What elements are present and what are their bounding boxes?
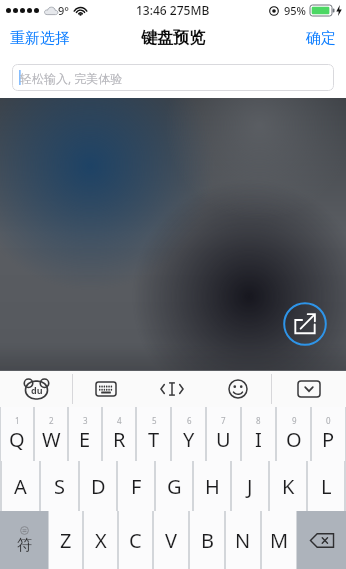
button[interactable]: M [262,511,296,569]
staticText: 9 [292,415,297,426]
button[interactable]: 2 [35,407,67,461]
staticText: N [235,527,251,554]
staticText: 符 [17,536,32,555]
button[interactable]: C [119,511,152,569]
button[interactable]: 重新选择 [0,22,80,55]
staticText: 0 [326,415,331,426]
staticText: A [14,473,27,500]
button[interactable]: 轻松输入, 完美体验 [12,64,334,91]
staticText: G [167,473,182,500]
button[interactable]: 4 [103,407,135,461]
button[interactable]: D [80,461,116,511]
button[interactable]: Keyboard layout [73,371,139,407]
button[interactable]: G [156,461,192,511]
staticText: H [205,473,220,500]
button[interactable]: S [41,461,78,511]
button[interactable]: X [84,511,117,569]
staticText: 确定 [306,29,336,48]
staticText: 8 [256,415,261,426]
button[interactable]: H [194,461,230,511]
button[interactable]: Hide keyboard [272,371,346,407]
button[interactable]: 6 [172,407,205,461]
staticText: W [42,426,61,453]
staticText: du [31,384,43,396]
button[interactable]: L [308,461,344,511]
staticText: R [113,426,126,453]
staticText: 5 [152,415,157,426]
staticText: 键盘预览 [141,28,205,48]
staticText: B [201,527,214,554]
button[interactable]: Z [49,511,82,569]
button[interactable]: Share [283,302,327,346]
staticText: O [286,426,302,453]
staticText: E [79,426,91,453]
staticText: T [148,426,160,453]
staticText: X [95,527,107,554]
staticText: 轻松输入, 完美体验 [20,70,123,86]
button[interactable]: 3 [69,407,101,461]
button[interactable]: A [2,461,39,511]
button[interactable]: J [232,461,268,511]
button[interactable]: 1 [1,407,33,461]
staticText: 4 [117,415,122,426]
staticText: 13:46 275MB [136,2,210,18]
button[interactable]: 确定 [296,22,346,55]
staticText: 2 [49,415,54,426]
staticText: 1 [15,415,20,426]
staticText: P [322,426,335,453]
button[interactable]: 0 [312,407,345,461]
staticText: V [165,527,177,554]
button[interactable]: Move cursor [139,371,205,407]
staticText: M [270,527,289,554]
staticText: J [247,473,253,500]
staticText: 3 [83,415,88,426]
button[interactable]: N [226,511,260,569]
staticText: 95% [284,3,306,18]
button[interactable]: 符 [0,511,48,569]
button[interactable]: V [154,511,188,569]
staticText: Z [60,527,72,554]
staticText: L [321,473,332,500]
staticText: Y [183,426,195,453]
staticText: S [54,473,65,500]
staticText: 6 [187,415,192,426]
staticText: F [131,473,142,500]
staticText: 7 [221,415,226,426]
button[interactable]: B [190,511,224,569]
staticText: D [91,473,106,500]
button[interactable]: 9 [277,407,310,461]
staticText: I [255,426,262,453]
staticText: U [216,426,231,453]
staticText: Q [9,426,25,453]
staticText: C [129,527,142,554]
button[interactable]: 8 [242,407,275,461]
button[interactable]: F [118,461,154,511]
staticText: 9° [58,3,69,18]
button[interactable]: 7 [207,407,240,461]
button[interactable]: Baidu input [0,371,72,407]
button[interactable]: K [270,461,306,511]
staticText: K [282,473,295,500]
button[interactable]: 5 [137,407,170,461]
button[interactable]: Backspace [297,511,346,569]
button[interactable]: Emoji [205,371,271,407]
staticText: 重新选择 [10,29,70,48]
